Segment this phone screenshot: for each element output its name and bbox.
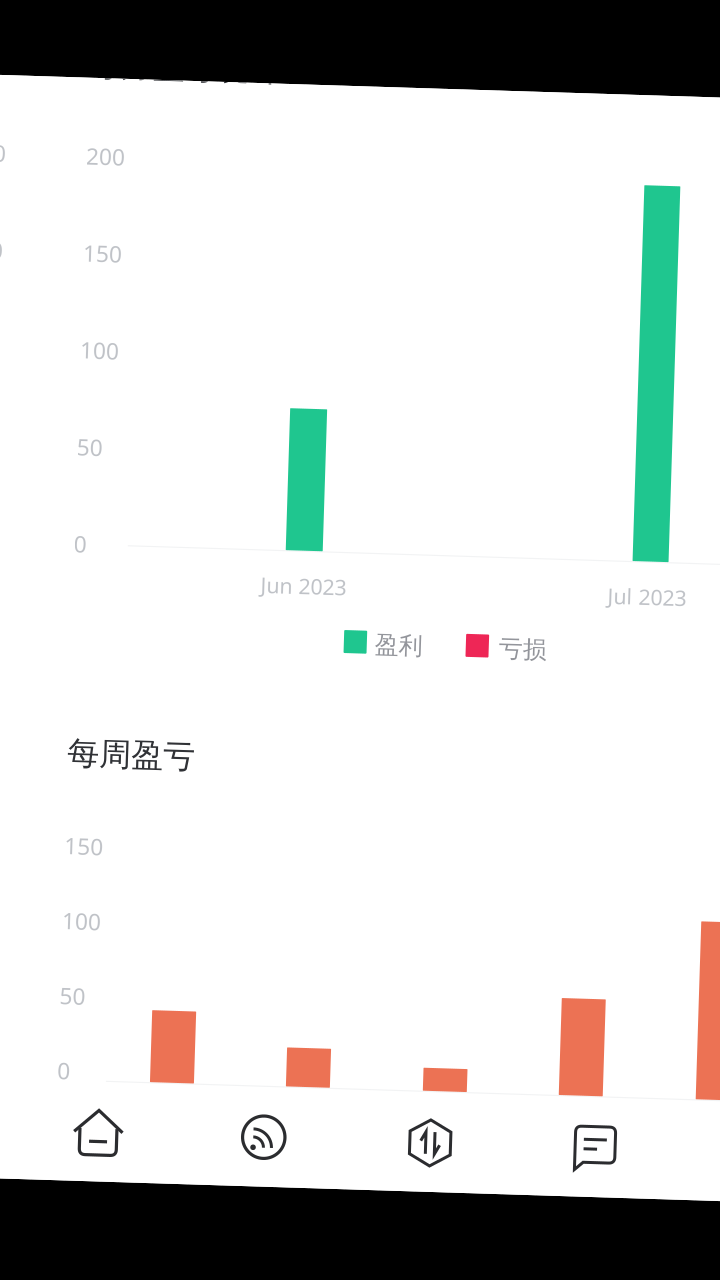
button[interactable]: Feed (0, 86, 90, 156)
staticText: 100 (71, 343, 110, 373)
staticText: 100 (71, 914, 110, 944)
staticText: 亏损 (499, 629, 547, 659)
staticText: 150 (71, 839, 110, 869)
staticText: 每月盈亏统计 (71, 53, 263, 93)
staticText: 150 (71, 246, 110, 276)
button[interactable]: Transfers (0, 86, 90, 156)
button[interactable]: Messages (0, 86, 90, 156)
staticText: 盈利 (375, 629, 423, 659)
button[interactable]: Home (0, 86, 90, 156)
staticText: 每周盈亏 (71, 742, 199, 782)
staticText: Jul 2023 (606, 573, 685, 602)
staticText: Jun 2023 (259, 573, 345, 602)
staticText: 0 (71, 537, 84, 567)
staticText: 50 (71, 440, 97, 470)
staticText: 200 (71, 149, 110, 179)
staticText: 50 (71, 989, 97, 1019)
